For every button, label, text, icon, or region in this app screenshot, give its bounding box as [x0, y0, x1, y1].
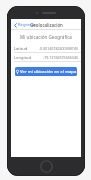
staticText: Mi ubicación Geográfica	[14, 34, 78, 40]
staticText: -79.13766575656346	[42, 55, 78, 60]
staticText: -0.00140782400008745	[38, 46, 78, 51]
button[interactable]: Latitud	[11, 44, 81, 52]
staticText: Geolocalización	[30, 22, 63, 28]
staticText: Longitud	[14, 55, 31, 60]
button[interactable]: Ver mi ubicación en el mapa	[15, 67, 77, 76]
staticText: Ver mi ubicación en el mapa	[20, 69, 77, 75]
button[interactable]: Longitud	[11, 53, 81, 61]
staticText: Latitud	[14, 46, 28, 51]
staticText: Regresar	[18, 22, 36, 28]
button[interactable]: Regresar	[13, 21, 37, 29]
